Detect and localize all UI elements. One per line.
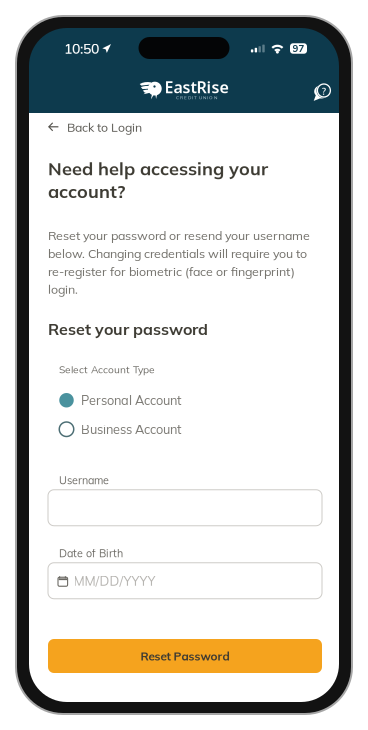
button[interactable]: Business Account — [59, 415, 322, 444]
staticText: 97 — [292, 42, 304, 54]
staticText: ? — [321, 84, 326, 97]
staticText: Date of Birth — [59, 547, 123, 560]
staticText: 10:50 — [64, 40, 99, 57]
staticText: C R E D I T U N I O N — [176, 95, 217, 100]
staticText: Reset your password — [48, 319, 208, 339]
staticText: Need help accessing your account? — [48, 157, 268, 202]
staticText: Username — [59, 474, 109, 487]
button[interactable]: Back to Login — [48, 113, 322, 140]
staticText: Personal Account — [81, 392, 181, 408]
button[interactable]: Reset Password — [48, 639, 322, 673]
staticText: MM/DD/YYYY — [74, 573, 156, 589]
staticText: Back to Login — [67, 119, 142, 135]
staticText: Reset your password or resend your usern… — [48, 227, 310, 297]
staticText: Reset Password — [140, 649, 229, 663]
button[interactable]: MM/DD/YYYY — [48, 563, 322, 599]
button[interactable]: Personal Account — [59, 386, 322, 415]
button[interactable]: Help — [306, 75, 338, 105]
staticText: Select Account Type — [59, 363, 155, 376]
staticText: EastRise — [164, 76, 228, 98]
staticText: Business Account — [81, 421, 181, 437]
button[interactable] — [48, 490, 322, 526]
